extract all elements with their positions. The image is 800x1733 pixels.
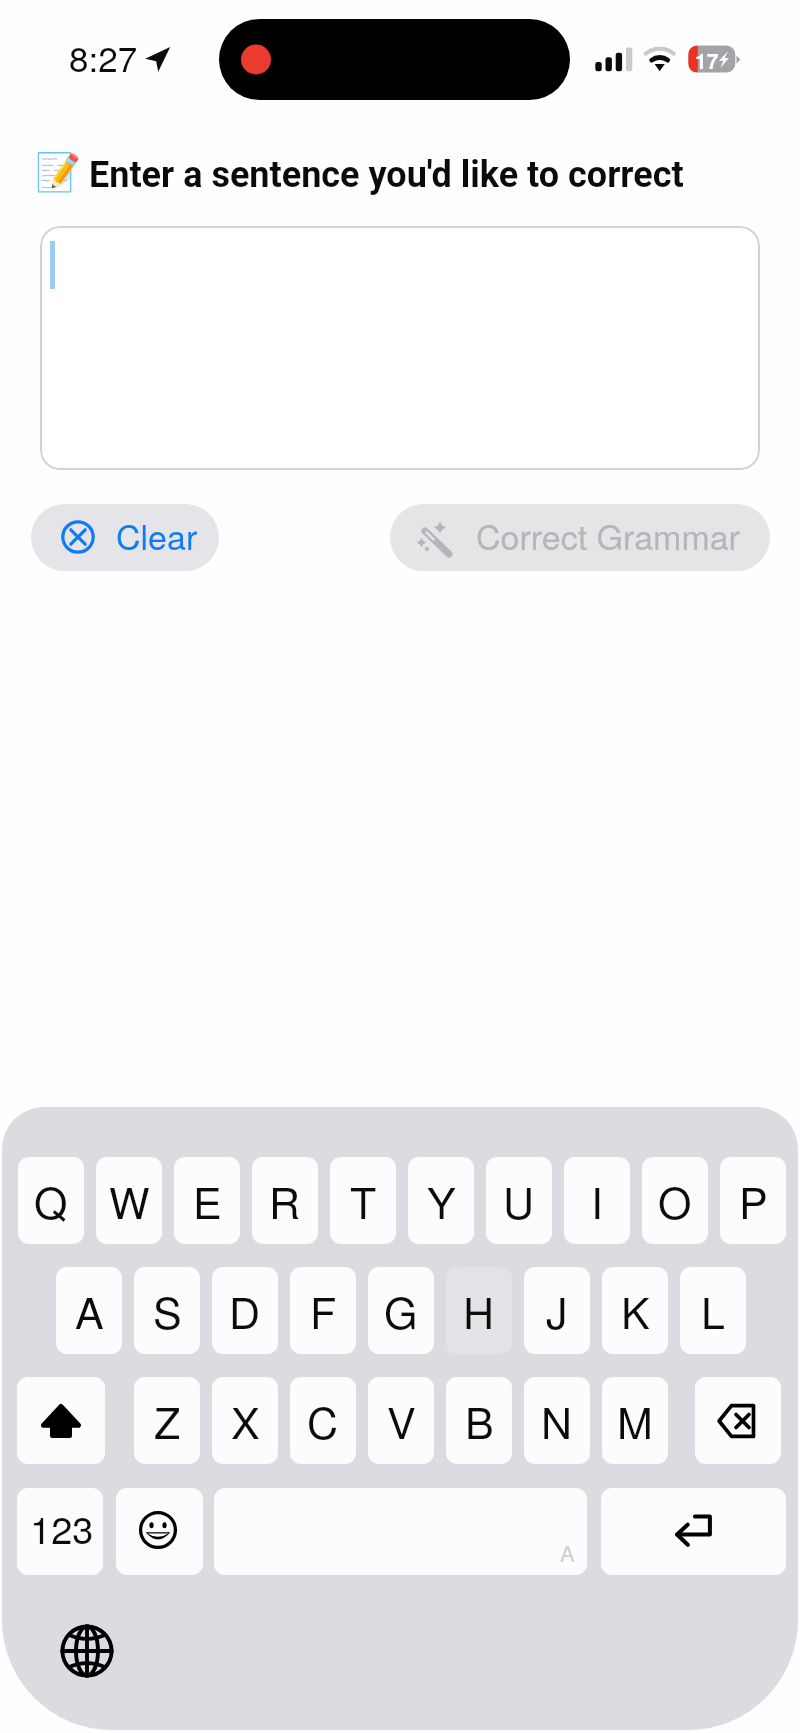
button[interactable]: Backspace (695, 1377, 781, 1464)
button[interactable]: Clear (31, 504, 219, 571)
button[interactable]: H (446, 1267, 512, 1354)
button[interactable]: C (290, 1377, 356, 1464)
staticText: 📝 (35, 151, 82, 194)
button[interactable]: E (174, 1157, 240, 1244)
button[interactable]: J (524, 1267, 590, 1354)
button[interactable]: Change keyboard (54, 1618, 120, 1684)
staticText: L (701, 1280, 725, 1342)
staticText: E (193, 1170, 222, 1232)
staticText: B (465, 1390, 494, 1452)
staticText: M (617, 1390, 653, 1452)
button[interactable]: Emoji (116, 1488, 203, 1575)
button[interactable]: L (680, 1267, 746, 1354)
staticText: H (463, 1280, 495, 1342)
button[interactable]: Z (134, 1377, 200, 1464)
button[interactable]: U (486, 1157, 552, 1244)
button[interactable]: I (564, 1157, 630, 1244)
button[interactable]: O (642, 1157, 708, 1244)
staticText: J (546, 1280, 568, 1342)
button[interactable]: M (602, 1377, 668, 1464)
button[interactable]: Shift (17, 1377, 105, 1464)
button[interactable]: Q (18, 1157, 84, 1244)
staticText: A (560, 1537, 575, 1569)
button[interactable]: R (252, 1157, 318, 1244)
staticText: Enter a sentence you'd like to correct (89, 154, 684, 196)
staticText: U (503, 1170, 535, 1232)
button[interactable]: T (330, 1157, 396, 1244)
staticText: O (658, 1170, 692, 1232)
button[interactable] (40, 226, 760, 470)
staticText: Clear (116, 511, 198, 560)
staticText: W (109, 1170, 150, 1232)
staticText: K (621, 1280, 650, 1342)
staticText: G (384, 1280, 418, 1342)
button[interactable]: F (290, 1267, 356, 1354)
staticText: I (591, 1170, 603, 1232)
staticText: X (231, 1390, 260, 1452)
staticText: F (310, 1280, 337, 1342)
button[interactable]: G (368, 1267, 434, 1354)
button[interactable]: Return (601, 1488, 786, 1575)
staticText: Z (154, 1390, 181, 1452)
button[interactable]: N (524, 1377, 590, 1464)
staticText: Q (34, 1170, 68, 1232)
button[interactable]: P (720, 1157, 786, 1244)
button[interactable]: S (134, 1267, 200, 1354)
button[interactable]: Correct Grammar (390, 504, 770, 571)
staticText: 123 (30, 1500, 94, 1554)
staticText: N (541, 1390, 573, 1452)
staticText: D (229, 1280, 261, 1342)
staticText: P (739, 1170, 768, 1232)
button[interactable]: Numbers (17, 1488, 103, 1575)
button[interactable]: W (96, 1157, 162, 1244)
staticText: R (269, 1170, 301, 1232)
staticText: C (307, 1390, 339, 1452)
staticText: V (387, 1390, 416, 1452)
staticText: 17 (695, 45, 719, 73)
button[interactable]: K (602, 1267, 668, 1354)
staticText: T (350, 1170, 377, 1232)
staticText: 8:27 (69, 32, 138, 82)
staticText: Y (427, 1170, 456, 1232)
staticText: S (153, 1280, 182, 1342)
button[interactable]: A (56, 1267, 122, 1354)
button[interactable]: V (368, 1377, 434, 1464)
staticText: Correct Grammar (476, 511, 740, 560)
button[interactable]: Y (408, 1157, 474, 1244)
staticText: A (75, 1280, 104, 1342)
button[interactable]: B (446, 1377, 512, 1464)
button[interactable]: X (212, 1377, 278, 1464)
button[interactable]: D (212, 1267, 278, 1354)
